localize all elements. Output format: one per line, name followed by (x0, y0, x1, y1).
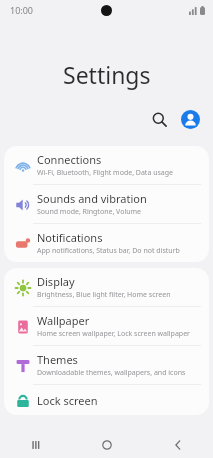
staticText: Sounds and vibration (37, 191, 147, 206)
staticText: App notifications, Status bar, Do not di… (37, 246, 180, 256)
button[interactable]: Search (144, 104, 174, 134)
button[interactable]: Connections (4, 146, 209, 184)
staticText: Settings (63, 59, 151, 90)
staticText: Home screen wallpaper, Lock screen wallp… (37, 329, 190, 339)
button[interactable]: Recents (0, 432, 71, 458)
staticText: Sound mode, Ringtone, Volume (37, 207, 142, 217)
staticText: Wi-Fi, Bluetooth, Flight mode, Data usag… (37, 168, 174, 178)
staticText: Brightness, Blue light filter, Home scre… (37, 290, 171, 300)
staticText: Themes (37, 352, 78, 367)
button[interactable]: Home (71, 432, 142, 458)
staticText: Notifications (37, 230, 103, 245)
staticText: Lock screen (37, 393, 98, 408)
staticText: 10:00 (10, 4, 34, 16)
button[interactable]: Themes (4, 346, 209, 384)
button[interactable]: Notifications (4, 224, 209, 262)
button[interactable]: Lock screen (4, 385, 209, 415)
button[interactable]: Sounds and vibration (4, 185, 209, 223)
staticText: Connections (37, 152, 102, 167)
button[interactable]: Back (142, 432, 213, 458)
button[interactable]: Wallpaper (4, 307, 209, 345)
staticText: Downloadable themes, wallpapers, and ico… (37, 368, 186, 378)
button[interactable]: Account (175, 104, 205, 134)
button[interactable]: Display (4, 268, 209, 306)
staticText: Wallpaper (37, 313, 90, 328)
staticText: Display (37, 274, 75, 289)
